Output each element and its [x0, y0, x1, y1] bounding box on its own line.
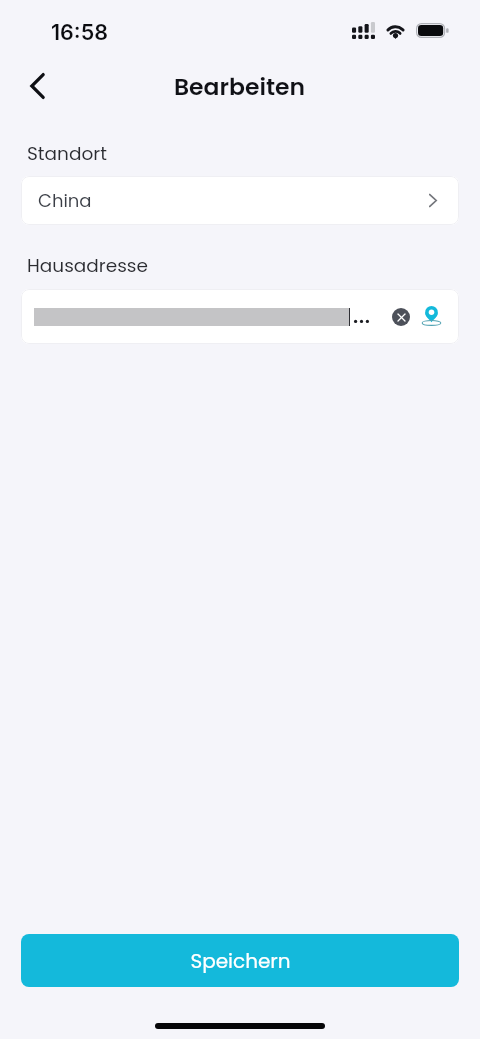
button[interactable]: China — [21, 176, 459, 225]
staticText: China — [38, 188, 92, 213]
button[interactable]: Back — [13, 60, 61, 108]
staticText: Hausadresse — [27, 253, 148, 279]
button[interactable]: Pick location on map — [421, 305, 442, 329]
button[interactable]: Clear address — [392, 308, 410, 326]
staticText: Speichern — [190, 947, 291, 975]
button[interactable]: Speichern — [21, 934, 459, 987]
staticText: Bearbeiten — [174, 70, 306, 103]
staticText: Standort — [27, 141, 107, 167]
staticText: 16:58 — [51, 19, 108, 45]
